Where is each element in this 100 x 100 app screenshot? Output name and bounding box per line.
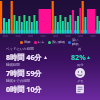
staticText: 睡眠までの時間: [6, 79, 30, 83]
staticText: 睡眠時間: [6, 63, 20, 67]
staticText: 8時間 46分: [6, 52, 42, 62]
staticText: 82%: [71, 52, 86, 62]
button[interactable]: [0, 0, 100, 38]
staticText: ベッドにいた時間: [6, 47, 34, 51]
staticText: 0時間 10分: [6, 84, 42, 94]
staticText: 気分: [77, 63, 84, 67]
button[interactable]: 睡眠までの時間: [0, 78, 100, 94]
staticText: 質: [78, 47, 82, 51]
button[interactable]: ベッドにいた時間: [0, 46, 100, 62]
button[interactable]: メモ: [75, 84, 85, 94]
staticText: 深い睡眠: [72, 38, 80, 46]
staticText: 7時間 59分: [6, 68, 42, 78]
staticText: レム: [38, 40, 45, 44]
staticText: 覚醒: [24, 40, 31, 44]
staticText: メモ: [77, 79, 84, 83]
button[interactable]: 睡眠時間: [0, 62, 100, 78]
staticText: 浅い睡眠: [52, 40, 65, 44]
button[interactable]: 気分: [75, 68, 85, 78]
